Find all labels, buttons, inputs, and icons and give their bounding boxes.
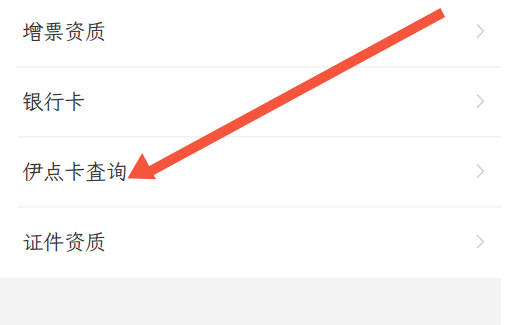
- staticText: 增票资质: [22, 17, 106, 45]
- staticText: 证件资质: [22, 227, 106, 256]
- button[interactable]: 银行卡: [0, 66, 501, 136]
- button[interactable]: 增票资质: [0, 0, 501, 66]
- button[interactable]: 伊点卡查询: [0, 136, 501, 206]
- button[interactable]: 证件资质: [0, 205, 501, 278]
- staticText: 银行卡: [22, 87, 85, 115]
- staticText: 伊点卡查询: [22, 157, 127, 185]
